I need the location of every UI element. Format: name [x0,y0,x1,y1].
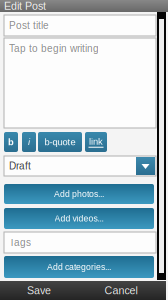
button[interactable]: Add photos... [4,184,154,204]
button[interactable]: i [22,132,36,152]
button[interactable]: Cancel [80,281,162,300]
staticText: Save [27,284,51,296]
staticText: i [28,137,30,147]
button[interactable]: Add videos... [4,208,154,229]
staticText: Post title [9,20,49,31]
staticText: Draft [9,160,31,172]
button[interactable]: Change post status [136,157,155,175]
button[interactable]: b [4,132,18,152]
staticText: Cancel [104,284,137,296]
button[interactable]: Tags [4,232,156,253]
button[interactable]: b-quote [38,132,82,152]
staticText: link [89,136,103,147]
staticText: Add videos... [54,214,103,223]
staticText: Tap to begin writing [9,43,99,54]
staticText: Add photos... [54,189,104,199]
button[interactable]: Add categories... [4,256,154,278]
staticText: b-quote [44,137,75,147]
button[interactable]: link [85,132,107,152]
staticText: Edit Post [4,0,46,12]
button[interactable]: Save [0,281,80,300]
button[interactable]: Tap to begin writing [4,38,156,128]
button[interactable]: Post title [4,15,156,36]
staticText: b [8,137,14,147]
staticText: Tags [9,237,31,248]
staticText: Add categories... [47,262,111,272]
